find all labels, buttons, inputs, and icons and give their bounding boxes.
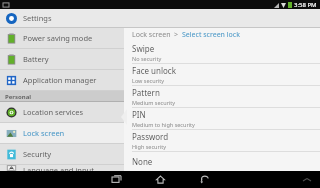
- staticText: Lock screen: [23, 128, 65, 138]
- staticText: 3:58 PM: [294, 1, 317, 9]
- button[interactable]: Expand: [294, 171, 320, 188]
- staticText: Pattern: [132, 87, 160, 98]
- button[interactable]: Power saving mode: [0, 28, 124, 48]
- staticText: >: [174, 30, 179, 40]
- button[interactable]: Password: [124, 130, 320, 151]
- button[interactable]: Swipe: [124, 42, 320, 63]
- button[interactable]: None: [124, 152, 320, 171]
- button[interactable]: Home: [146, 171, 174, 188]
- button[interactable]: Back: [190, 171, 218, 188]
- button[interactable]: PIN: [124, 108, 320, 129]
- button[interactable]: Language and input: [0, 165, 124, 171]
- button[interactable]: Face unlock: [124, 64, 320, 85]
- staticText: Swipe: [132, 43, 155, 54]
- button[interactable]: Recent apps: [102, 171, 130, 188]
- staticText: Face unlock: [132, 65, 176, 76]
- staticText: PIN: [132, 109, 146, 120]
- button[interactable]: Select screen lock: [182, 30, 240, 40]
- staticText: Battery: [23, 54, 49, 64]
- staticText: Location services: [23, 107, 84, 117]
- staticText: Select screen lock: [182, 30, 240, 40]
- staticText: Language and input: [23, 165, 94, 171]
- button[interactable]: Location services: [0, 102, 124, 122]
- staticText: High security: [132, 143, 166, 150]
- button[interactable]: Settings: [0, 9, 124, 27]
- staticText: Password: [132, 131, 169, 142]
- staticText: Medium to high security: [132, 121, 195, 128]
- staticText: Personal: [5, 93, 32, 101]
- staticText: Medium security: [132, 99, 176, 106]
- staticText: Lock screen: [132, 30, 171, 40]
- staticText: Application manager: [23, 75, 97, 85]
- staticText: Low security: [132, 77, 165, 84]
- button[interactable]: Lock screen: [0, 123, 124, 143]
- staticText: None: [132, 156, 153, 167]
- button[interactable]: Security: [0, 144, 124, 164]
- button[interactable]: Battery: [0, 49, 124, 69]
- staticText: Security: [23, 149, 52, 159]
- button[interactable]: Lock screen: [132, 30, 171, 40]
- staticText: Power saving mode: [23, 33, 93, 43]
- button[interactable]: Pattern: [124, 86, 320, 107]
- staticText: No security: [132, 55, 162, 62]
- button[interactable]: Application manager: [0, 70, 124, 90]
- staticText: Settings: [23, 13, 52, 23]
